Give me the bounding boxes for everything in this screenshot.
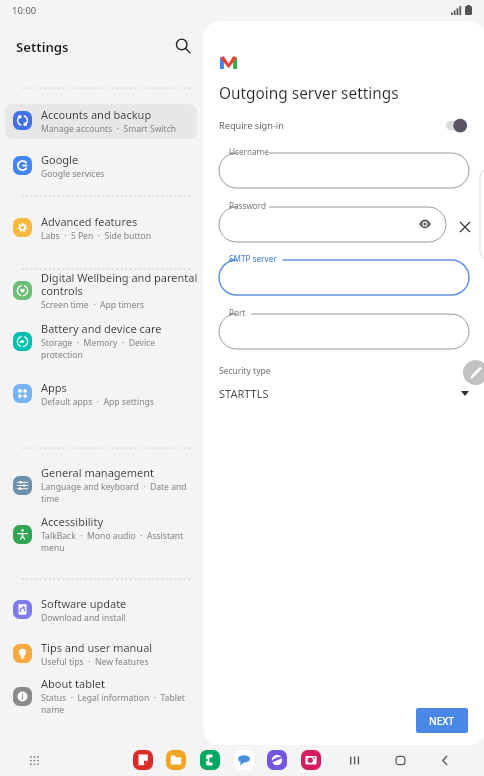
- staticText: Manage accounts · Smart Switch: [41, 123, 177, 135]
- staticText: Tips and user manual: [41, 640, 153, 655]
- staticText: Default apps · App settings: [41, 396, 154, 408]
- button[interactable]: Clear: [451, 213, 479, 241]
- button[interactable]: home: [390, 750, 411, 771]
- button[interactable]: browser: [267, 750, 287, 770]
- staticText: STARTTLS: [219, 386, 269, 401]
- staticText: Language and keyboard · Date and time: [41, 481, 197, 504]
- button[interactable]: Software update: [5, 593, 197, 628]
- button[interactable]: folder: [166, 750, 186, 770]
- button[interactable]: Apps: [5, 377, 197, 412]
- staticText: About tablet: [41, 676, 105, 691]
- button[interactable]: camera: [301, 750, 321, 770]
- staticText: Apps: [41, 380, 67, 395]
- staticText: Storage · Memory · Device protection: [41, 337, 197, 360]
- staticText: Status · Legal information · Tablet name: [41, 692, 197, 715]
- button[interactable]: Require sign-in: [219, 115, 484, 136]
- staticText: Port: [229, 307, 246, 318]
- button[interactable]: Show password: [414, 213, 436, 235]
- staticText: Download and install: [41, 612, 126, 624]
- button[interactable]: NEXT: [416, 708, 468, 733]
- button[interactable]: General management: [5, 463, 197, 509]
- staticText: Settings: [16, 38, 69, 56]
- staticText: TalkBack · Mono audio · Assistant menu: [41, 530, 197, 553]
- staticText: Software update: [41, 596, 127, 611]
- button[interactable]: Tips and user manual: [5, 637, 197, 672]
- staticText: Google services: [41, 168, 105, 180]
- button[interactable]: recents: [345, 750, 366, 771]
- button[interactable]: All apps: [24, 750, 45, 771]
- staticText: 10:00: [12, 4, 37, 17]
- staticText: Accounts and backup: [41, 107, 152, 122]
- staticText: Username: [229, 146, 269, 157]
- staticText: Useful tips · New features: [41, 656, 149, 668]
- button[interactable]: Google: [5, 149, 197, 184]
- button[interactable]: Edit: [463, 360, 484, 385]
- staticText: Digital Wellbeing and parental controls: [41, 270, 197, 298]
- button[interactable]: back: [435, 750, 456, 771]
- button[interactable]: chat: [234, 750, 254, 770]
- staticText: Security type: [219, 365, 271, 377]
- button[interactable]: Search: [170, 33, 196, 59]
- staticText: Password: [229, 200, 267, 211]
- staticText: NEXT: [429, 714, 455, 728]
- staticText: SMTP server: [229, 253, 277, 264]
- button[interactable]: Digital Wellbeing and parental controls: [5, 268, 197, 314]
- staticText: Outgoing server settings: [219, 83, 399, 104]
- button[interactable]: Accessibility: [5, 512, 197, 558]
- staticText: Require sign-in: [219, 119, 284, 132]
- button[interactable]: STARTTLS: [219, 383, 469, 403]
- button[interactable]: About tablet: [5, 674, 197, 720]
- staticText: Advanced features: [41, 214, 138, 229]
- button[interactable]: doc: [133, 750, 153, 770]
- staticText: Accessibility: [41, 514, 104, 529]
- staticText: Labs · S Pen · Side button: [41, 230, 152, 242]
- button[interactable]: Require sign-in: [443, 115, 478, 136]
- button[interactable]: Accounts and backup: [5, 104, 197, 139]
- button[interactable]: phone: [200, 750, 220, 770]
- staticText: Battery and device care: [41, 321, 162, 336]
- button[interactable]: Advanced features: [5, 211, 197, 246]
- button[interactable]: Battery and device care: [5, 319, 197, 365]
- staticText: Google: [41, 152, 79, 167]
- staticText: General management: [41, 465, 155, 480]
- staticText: Screen time · App timers: [41, 299, 145, 311]
